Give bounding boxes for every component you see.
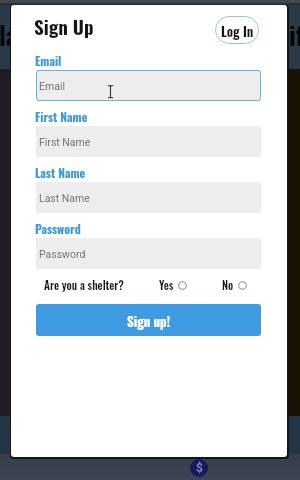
staticText: $ [196, 461, 203, 475]
button[interactable]: Password [36, 238, 261, 269]
staticText: Email [35, 52, 62, 70]
staticText: Last Name [39, 192, 90, 204]
staticText: Yes [159, 277, 174, 293]
button[interactable]: Yes [159, 277, 187, 293]
staticText: Email [39, 80, 65, 92]
staticText: Password [35, 220, 81, 238]
staticText: Password [39, 248, 86, 260]
button[interactable]: Log In [215, 16, 259, 44]
button[interactable]: No [222, 277, 247, 293]
staticText: First Name [39, 136, 91, 148]
button[interactable]: Donate [190, 459, 208, 477]
staticText: First Name [35, 108, 88, 126]
staticText: Are you a shelter? [44, 277, 124, 293]
staticText: No [222, 277, 234, 293]
staticText: la [0, 16, 18, 53]
staticText: if [289, 16, 300, 53]
staticText: Sign Up [34, 12, 94, 40]
button[interactable]: Last Name [36, 182, 261, 213]
button[interactable]: First Name [36, 126, 261, 157]
staticText: Sign up! [127, 311, 171, 330]
button[interactable]: Sign up! [36, 304, 261, 336]
button[interactable]: Email [36, 70, 261, 101]
staticText: Log In [221, 21, 254, 40]
staticText: Last Name [35, 164, 86, 182]
